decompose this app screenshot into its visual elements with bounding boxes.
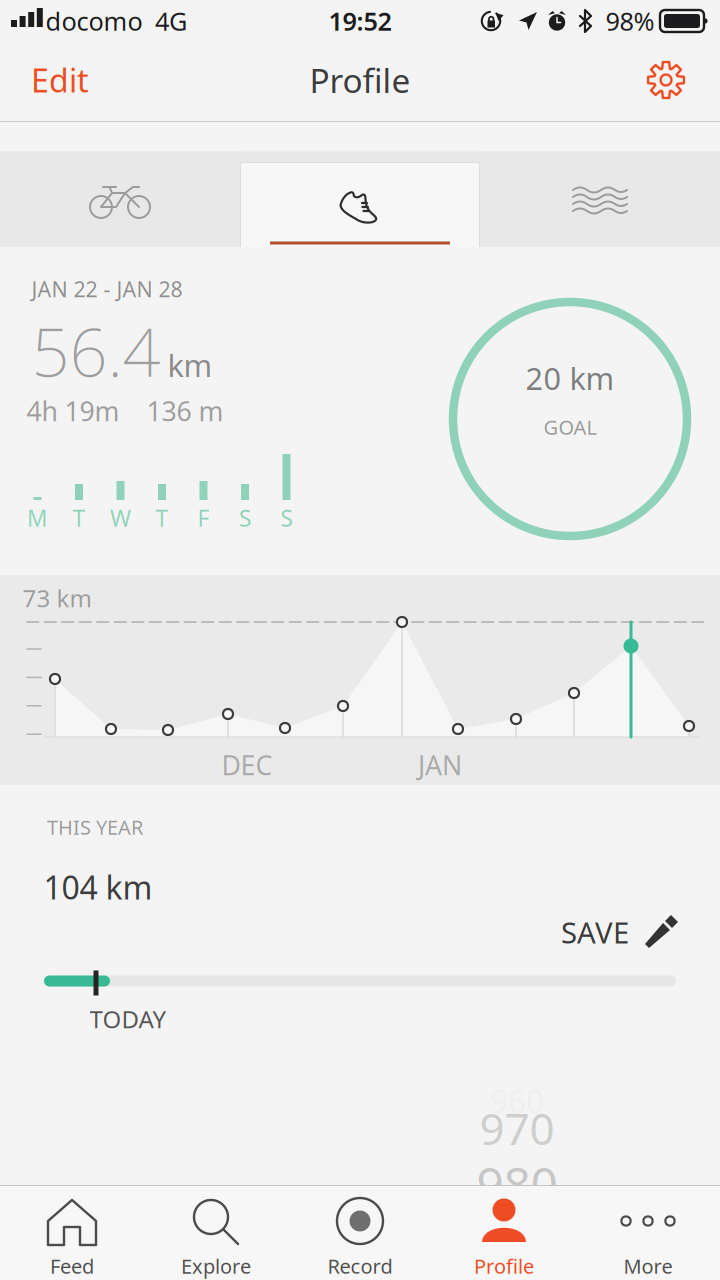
staticText: 73 km [22,582,91,614]
staticText: 56.4 [31,307,160,395]
staticText: JAN 22 - JAN 28 [31,275,182,303]
staticText: 4G [155,4,187,38]
button[interactable]: Settings [626,47,706,113]
staticText: 960 [490,1080,544,1122]
button[interactable]: Cycling [0,151,240,246]
staticText: 136 m [146,393,223,429]
staticText: JAN [418,747,462,783]
staticText: S [280,503,292,533]
staticText: km [167,345,212,385]
staticText: W [110,503,131,533]
staticText: DEC [221,747,272,783]
staticText: 19:52 [328,4,391,38]
button[interactable]: Profile [432,1185,576,1280]
staticText: S [239,503,251,533]
staticText: docomo [45,4,142,38]
staticText: T [72,503,85,533]
button[interactable]: Feed [0,1185,144,1280]
staticText: Profile [474,1253,534,1279]
staticText: SAVE [561,912,629,951]
staticText: 980 [476,1152,557,1216]
staticText: Profile [309,58,410,102]
button[interactable]: SAVE [551,904,691,960]
staticText: T [155,503,168,533]
button[interactable]: Record [288,1185,432,1280]
staticText: Feed [50,1253,94,1279]
button[interactable]: Swimming [480,151,720,246]
staticText: 98% [605,4,654,38]
button[interactable]: Running [240,162,480,247]
staticText: Explore [181,1253,251,1279]
staticText: THIS YEAR [47,814,143,840]
staticText: TODAY [89,1003,166,1035]
button[interactable]: Edit [12,47,108,113]
staticText: F [197,503,209,533]
staticText: GOAL [543,414,596,440]
button[interactable]: More [576,1185,720,1280]
staticText: More [623,1253,672,1279]
staticText: Record [327,1253,392,1279]
staticText: M [27,503,48,533]
staticText: 20 km [525,358,614,398]
staticText: Edit [31,59,89,101]
staticText: 104 km [43,866,152,908]
button[interactable]: Explore [144,1185,288,1280]
staticText: 970 [479,1099,554,1157]
staticText: 4h 19m [26,393,119,429]
